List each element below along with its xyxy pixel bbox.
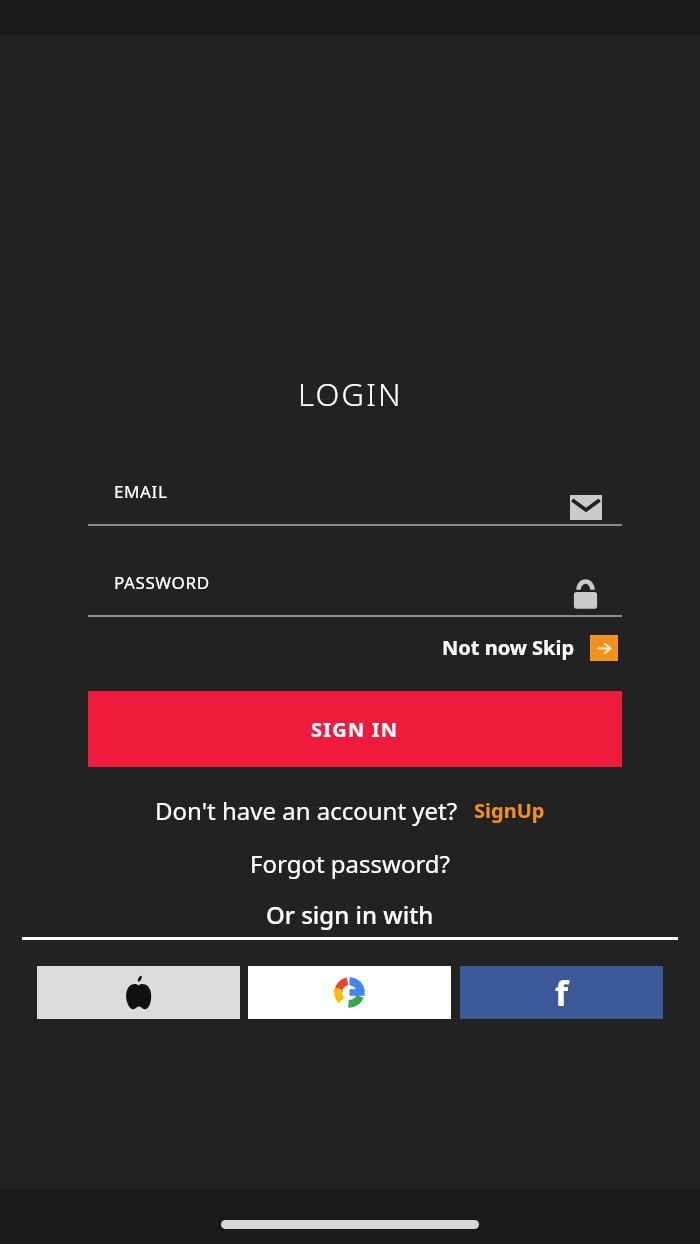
button[interactable]: PASSWORD [88,561,622,617]
staticText: LOGIN [298,373,403,415]
staticText: PASSWORD [114,571,210,594]
button[interactable]: Sign in with Facebook [460,966,663,1019]
button[interactable]: Sign in with Apple [37,966,240,1019]
button[interactable]: SIGN IN [88,691,622,767]
staticText: SignUp [474,797,545,824]
staticText: Not now Skip [442,634,575,661]
staticText: Or sign in with [266,898,434,931]
button[interactable]: SignUp [474,797,545,824]
staticText: SIGN IN [311,716,399,743]
staticText: f [555,970,569,1016]
staticText: Don't have an account yet? [155,794,458,827]
staticText: Forgot password? [250,847,451,880]
button[interactable]: Not now Skip [442,634,618,661]
staticText: EMAIL [114,480,168,503]
button[interactable]: Forgot password? [250,847,451,880]
button[interactable]: Sign in with Google [248,966,451,1019]
button[interactable]: EMAIL [88,470,622,526]
